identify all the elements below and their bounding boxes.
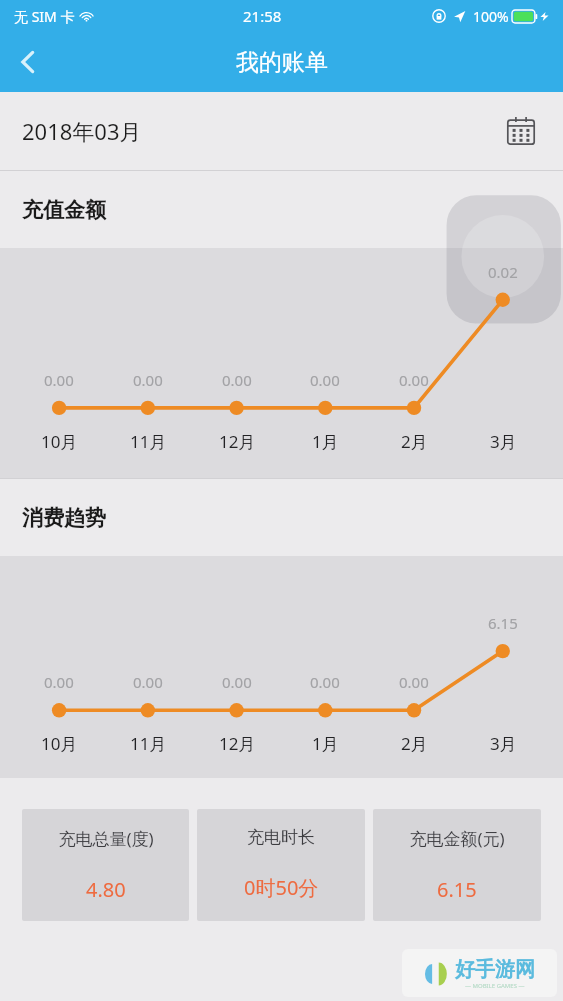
staticText: 6.15 bbox=[488, 613, 518, 633]
staticText: 消费趋势 bbox=[22, 505, 106, 531]
staticText: 12月 bbox=[219, 430, 256, 453]
staticText: 2月 bbox=[401, 430, 428, 453]
staticText: 12月 bbox=[219, 732, 256, 755]
staticText: 0.00 bbox=[222, 672, 252, 692]
staticText: 11月 bbox=[130, 732, 167, 755]
button[interactable]: 充电时长 bbox=[197, 809, 365, 921]
staticText: 0.00 bbox=[399, 370, 429, 390]
staticText: 6.15 bbox=[437, 876, 477, 903]
staticText: 3月 bbox=[490, 430, 517, 453]
staticText: 充电金额(元) bbox=[409, 827, 505, 850]
staticText: 0.00 bbox=[133, 370, 163, 390]
staticText: 充电时长 bbox=[247, 827, 315, 848]
staticText: 4.80 bbox=[86, 876, 126, 903]
staticText: 10月 bbox=[41, 732, 78, 755]
staticText: 2月 bbox=[401, 732, 428, 755]
staticText: 充电总量(度) bbox=[58, 827, 154, 850]
staticText: 21:58 bbox=[243, 6, 282, 26]
staticText: 0.00 bbox=[44, 672, 74, 692]
button[interactable]: Pick month bbox=[499, 109, 543, 153]
staticText: 0.00 bbox=[133, 672, 163, 692]
staticText: 11月 bbox=[130, 430, 167, 453]
staticText: 2018年03月 bbox=[22, 116, 142, 146]
button[interactable]: 充电金额(元) bbox=[373, 809, 541, 921]
staticText: 10月 bbox=[41, 430, 78, 453]
staticText: 0.00 bbox=[222, 370, 252, 390]
staticText: 3月 bbox=[490, 732, 517, 755]
staticText: — MOBILE GAMES — bbox=[465, 982, 525, 990]
staticText: 100% bbox=[473, 7, 509, 26]
staticText: 好手游网 bbox=[455, 957, 535, 982]
staticText: 0.00 bbox=[310, 370, 340, 390]
button[interactable]: Back bbox=[0, 34, 56, 90]
button[interactable]: 充电总量(度) bbox=[22, 809, 189, 921]
staticText: 0时50分 bbox=[244, 874, 319, 901]
staticText: 1月 bbox=[312, 430, 339, 453]
staticText: 充值金额 bbox=[22, 197, 106, 223]
staticText: 我的账单 bbox=[236, 48, 328, 77]
staticText: 1月 bbox=[312, 732, 339, 755]
staticText: 0.00 bbox=[310, 672, 340, 692]
staticText: 无 SIM 卡 bbox=[14, 7, 75, 26]
staticText: 0.00 bbox=[44, 370, 74, 390]
staticText: 0.02 bbox=[488, 262, 518, 282]
staticText: 0.00 bbox=[399, 672, 429, 692]
